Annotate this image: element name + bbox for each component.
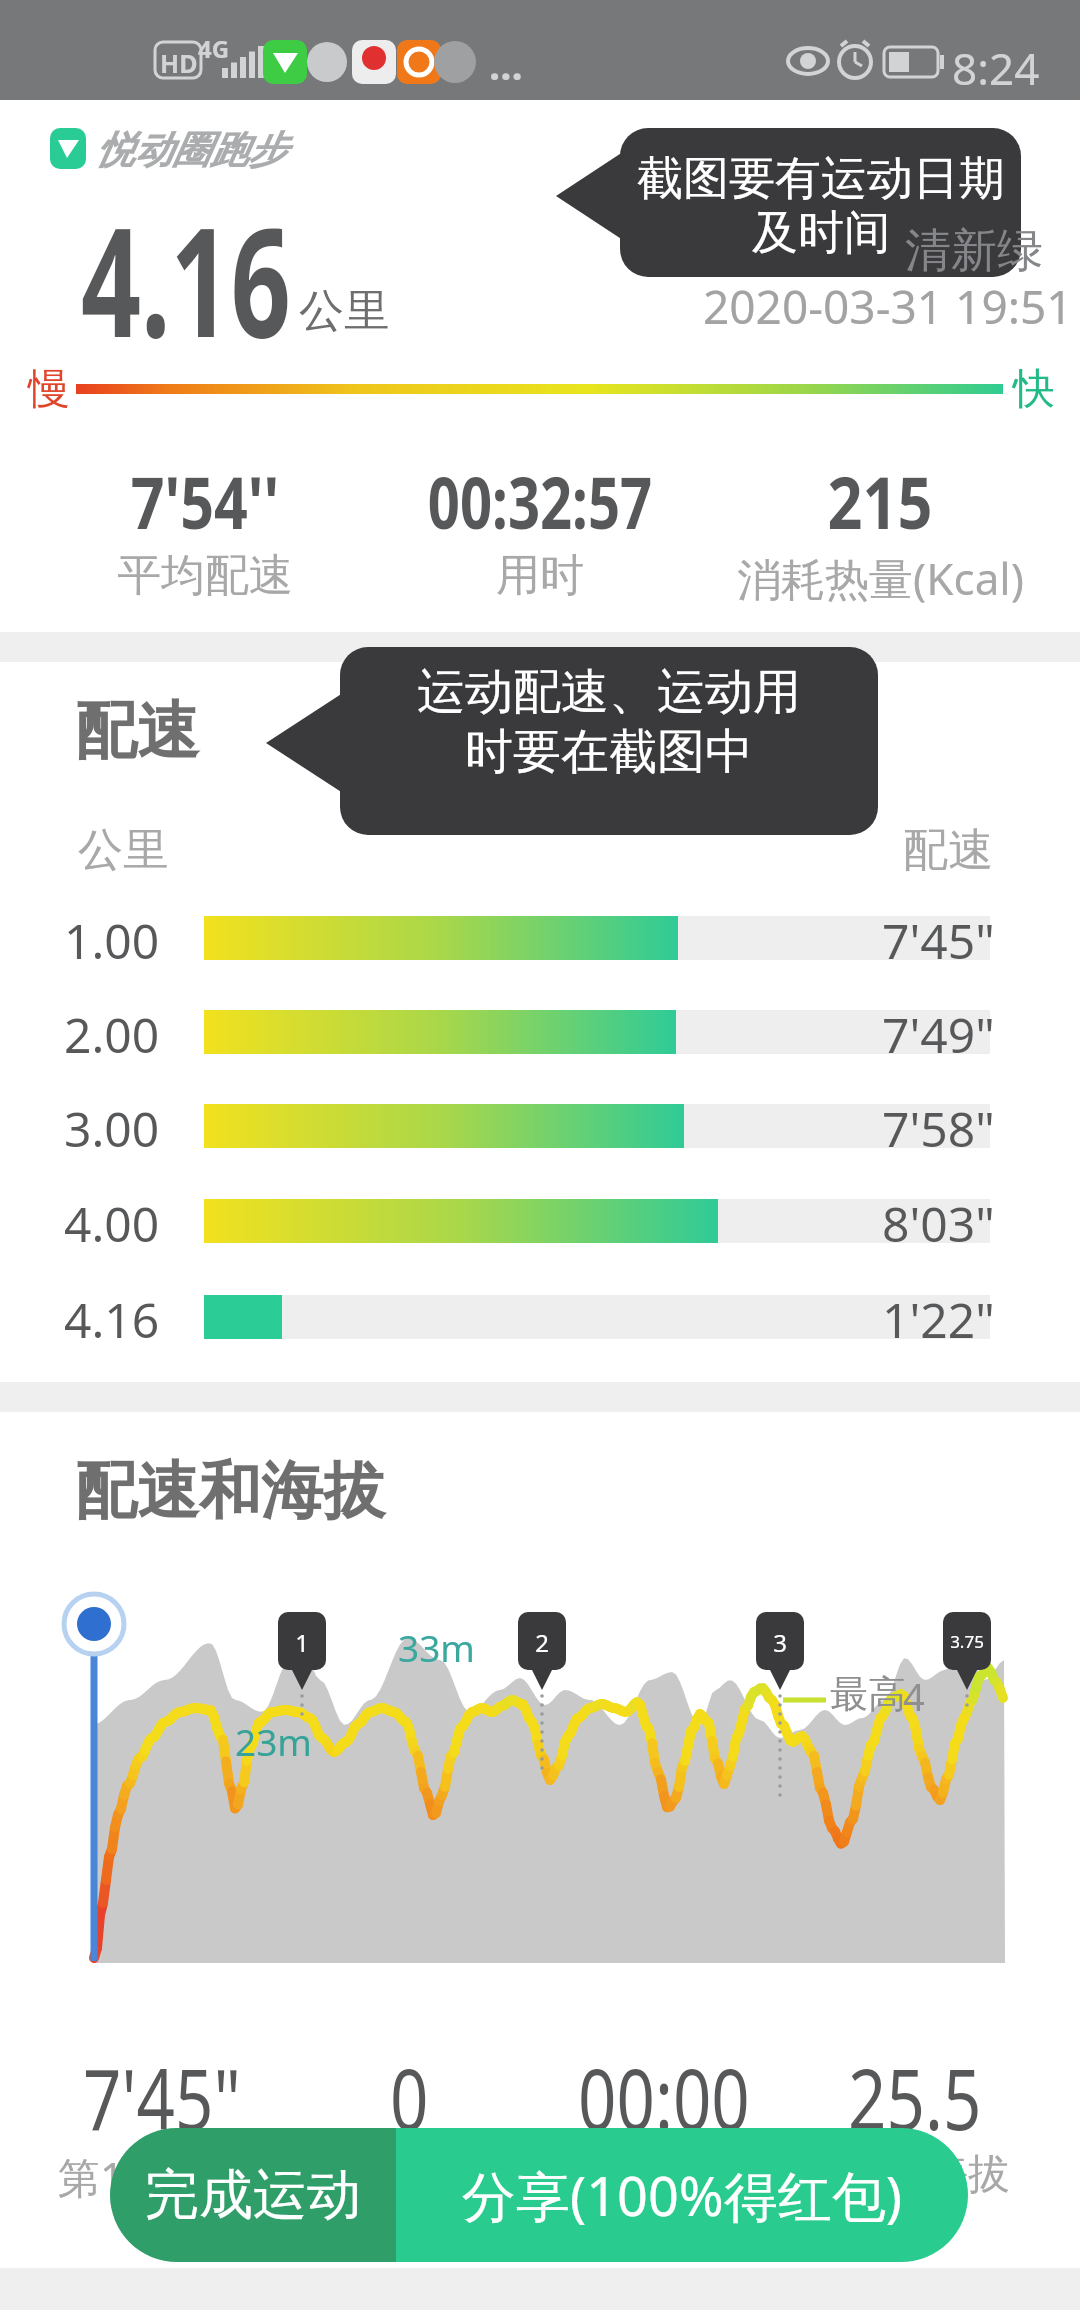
staticText: 运动配速、运动用 时要在截图中 [417, 662, 801, 782]
staticText: 3.75 [950, 1630, 984, 1653]
staticText: 215 [827, 452, 933, 550]
staticText: 7'54'' [130, 452, 280, 550]
staticText: 0 [390, 2040, 429, 2154]
staticText: 配速和海拔 [75, 1452, 385, 1530]
staticText: 清新绿 [905, 222, 1043, 280]
staticText: 截图要有运动日期 及时间 [637, 150, 1005, 262]
staticText: 7'58" [882, 1096, 995, 1161]
staticText: 第1公里配速 [58, 2148, 293, 2205]
staticText: 7'45" [83, 2040, 241, 2154]
staticText: 23m [235, 1716, 312, 1766]
staticText: 8'03" [882, 1191, 995, 1256]
staticText: 消耗热量(Kcal) [737, 548, 1024, 608]
staticText: 用时 [496, 548, 584, 603]
staticText: 1 [295, 1626, 309, 1659]
staticText: 33m [398, 1622, 475, 1672]
staticText: 1.00 [64, 908, 160, 973]
staticText: 4 [903, 1670, 925, 1722]
staticText: 最高海拔 [842, 2148, 1010, 2201]
staticText: 7'45" [882, 908, 995, 973]
staticText: 配速 [903, 822, 993, 879]
staticText: 配速 [75, 692, 199, 770]
staticText: 00:32:57 [428, 452, 652, 550]
staticText: 慢 [28, 363, 70, 416]
staticText: 4.16 [64, 1287, 160, 1352]
staticText: 公里 [78, 822, 168, 879]
staticText: 悦动圈跑步 [96, 126, 286, 174]
staticText: 2 [535, 1626, 549, 1659]
staticText: 25.5 [848, 2040, 982, 2154]
staticText: 完成运动 [145, 2161, 361, 2229]
staticText: 公里 [299, 283, 389, 340]
staticText: HD [160, 46, 198, 80]
staticText: ··· [489, 48, 523, 102]
staticText: 8:24 [952, 38, 1040, 98]
staticText: 平均配速 [117, 548, 293, 603]
staticText: 4G [198, 32, 230, 65]
staticText: 7'49" [882, 1002, 995, 1067]
staticText: 分享(100%得红包) [462, 2158, 902, 2232]
staticText: 00:00 [578, 2040, 750, 2154]
staticText: 2020-03-31 19:51 [703, 275, 1073, 338]
staticText: 最高 [830, 1670, 906, 1718]
staticText: 快 [1013, 363, 1055, 416]
staticText: 3.00 [64, 1096, 160, 1161]
staticText: 1'22" [882, 1287, 995, 1352]
staticText: 4.16 [81, 177, 291, 381]
staticText: 4.00 [64, 1191, 160, 1256]
staticText: 3 [773, 1626, 787, 1659]
staticText: 2.00 [64, 1002, 160, 1067]
